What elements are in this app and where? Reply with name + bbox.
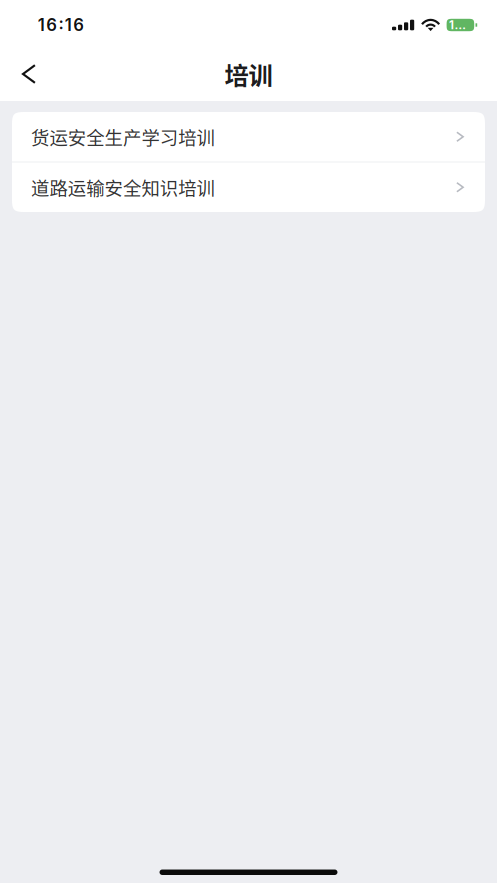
staticText: 道路运输安全知识培训 — [31, 174, 215, 200]
staticText: 货运安全生产学习培训 — [31, 123, 215, 150]
staticText: 培训 — [224, 56, 272, 91]
button[interactable]: 货运安全生产学习培训 — [12, 112, 485, 161]
staticText: 100 — [449, 18, 472, 32]
button[interactable]: Back — [0, 51, 56, 97]
staticText: 16:16 — [38, 15, 84, 35]
button[interactable]: 道路运输安全知识培训 — [12, 162, 485, 212]
